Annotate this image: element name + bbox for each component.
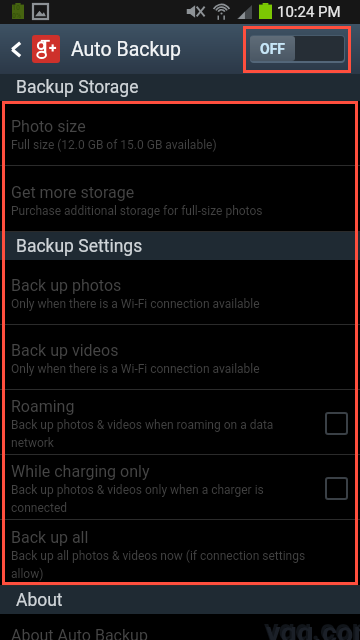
button[interactable]: While charging only checkbox — [322, 474, 350, 502]
staticText: Back up photos — [11, 276, 122, 295]
button[interactable]: Photo size — [0, 101, 360, 166]
staticText: Full size (12.0 GB of 15.0 GB available) — [11, 138, 217, 152]
button[interactable]: Roaming checkbox — [322, 409, 350, 437]
staticText: 10:24 PM — [277, 3, 341, 21]
staticText: Auto Backup — [71, 38, 182, 61]
button[interactable]: Roaming — [0, 390, 360, 455]
staticText: Back up all — [11, 528, 89, 547]
button[interactable]: While charging only — [0, 455, 360, 520]
staticText: ygg.com — [264, 613, 360, 640]
staticText: Only when there is a Wi-Fi connection av… — [11, 297, 260, 311]
staticText: Back up all photos & videos now (if conn… — [11, 549, 321, 581]
staticText: Backup Storage — [16, 77, 139, 98]
button[interactable]: Back up videos — [0, 325, 360, 390]
staticText: About Auto Backup — [11, 626, 148, 640]
button[interactable]: Back up photos — [0, 260, 360, 325]
button[interactable]: Back up all — [0, 520, 360, 586]
staticText: About — [16, 590, 63, 611]
staticText: Get more storage — [11, 183, 135, 202]
staticText: While charging only — [11, 462, 150, 481]
button[interactable]: Navigate up — [0, 24, 32, 74]
staticText: Back up photos & videos only when a char… — [11, 483, 306, 515]
staticText: Back up photos & videos when roaming on … — [11, 418, 306, 450]
staticText: OFF — [260, 41, 286, 57]
staticText: Backup Settings — [16, 236, 143, 257]
button[interactable]: Get more storage — [0, 166, 360, 232]
button[interactable]: Auto Backup off — [250, 35, 345, 63]
staticText: Roaming — [11, 397, 75, 416]
staticText: Photo size — [11, 117, 86, 136]
staticText: 100% — [12, 4, 24, 20]
staticText: ygg.com — [266, 616, 360, 640]
staticText: Back up videos — [11, 341, 119, 360]
staticText: Purchase additional storage for full-siz… — [11, 204, 263, 218]
staticText: Only when there is a Wi-Fi connection av… — [11, 362, 260, 376]
